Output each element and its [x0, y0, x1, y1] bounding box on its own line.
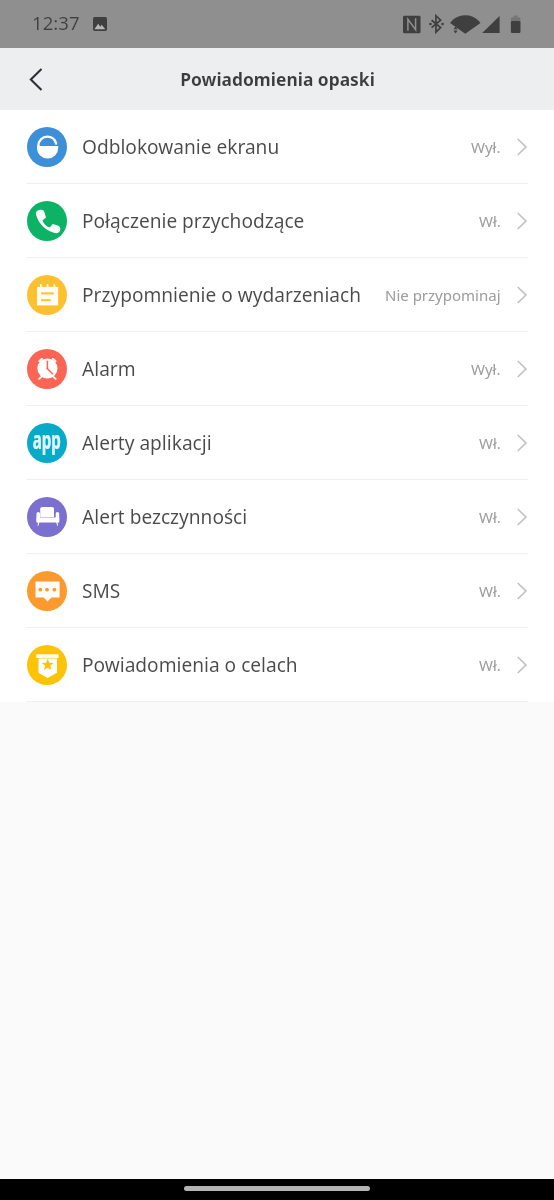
staticText: Wł. — [479, 581, 501, 601]
staticText: Alarm — [82, 356, 136, 382]
staticText: Połączenie przychodzące — [82, 208, 305, 234]
staticText: Powiadomienia o celach — [82, 652, 298, 678]
staticText: Nie przypominaj — [385, 285, 501, 305]
button[interactable]: SMS — [0, 554, 554, 627]
staticText: Odblokowanie ekranu — [82, 134, 280, 160]
staticText: Alert bezczynności — [82, 504, 248, 530]
staticText: Przypomnienie o wydarzeniach — [82, 282, 361, 308]
button[interactable]: Przypomnienie o wydarzeniach — [0, 258, 554, 331]
staticText: Powiadomienia opaski — [180, 67, 375, 91]
staticText: Wył. — [471, 137, 501, 157]
staticText: Wł. — [479, 655, 501, 675]
staticText: 12:37 — [32, 10, 80, 35]
button[interactable]: Powiadomienia o celach — [0, 628, 554, 701]
button[interactable]: Alarm — [0, 332, 554, 405]
staticText: Wł. — [479, 507, 501, 527]
button[interactable]: Połączenie przychodzące — [0, 184, 554, 257]
staticText: Wł. — [479, 433, 501, 453]
staticText: Alerty aplikacji — [82, 430, 212, 456]
staticText: Wył. — [471, 359, 501, 379]
staticText: Wł. — [479, 211, 501, 231]
button[interactable]: Odblokowanie ekranu — [0, 110, 554, 183]
button[interactable]: app — [0, 406, 554, 479]
staticText: app — [33, 423, 61, 457]
button[interactable]: Back — [14, 57, 58, 101]
staticText: SMS — [82, 578, 121, 604]
button[interactable]: Alert bezczynności — [0, 480, 554, 553]
